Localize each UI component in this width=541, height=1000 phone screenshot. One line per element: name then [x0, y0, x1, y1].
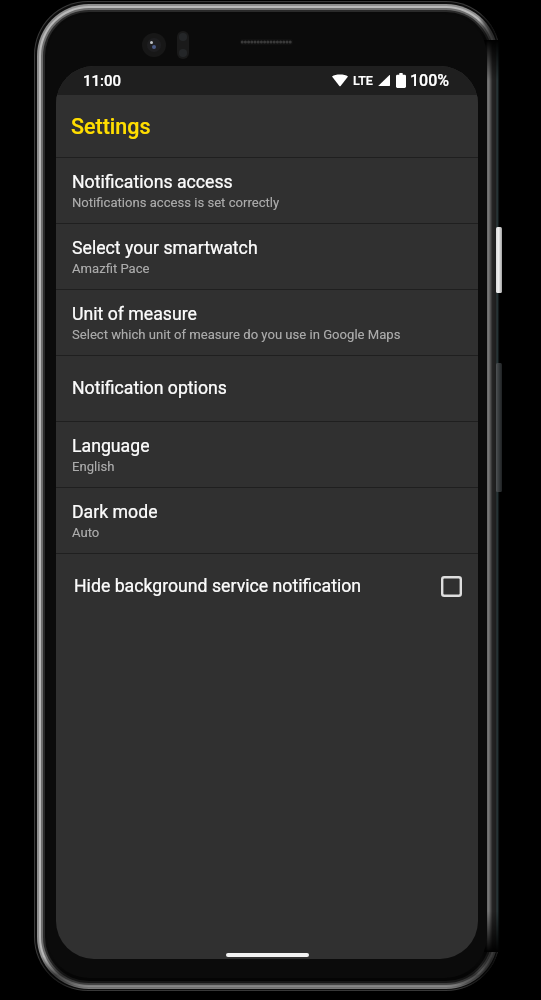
staticText: Settings — [71, 114, 151, 139]
staticText: 11:00 — [83, 72, 122, 90]
staticText: Select which unit of measure do you use … — [72, 327, 401, 342]
button[interactable]: Language — [56, 422, 478, 487]
staticText: Language — [72, 436, 150, 457]
staticText: LTE — [353, 73, 373, 88]
button[interactable]: Hide background service notification — [56, 554, 478, 619]
staticText: Select your smartwatch — [72, 238, 258, 259]
staticText: Amazfit Pace — [72, 261, 150, 276]
button[interactable]: Select your smartwatch — [56, 224, 478, 289]
other: Hide background service notification — [441, 576, 462, 597]
staticText: Hide background service notification — [74, 576, 441, 597]
button[interactable]: Notifications access — [56, 158, 478, 223]
button[interactable]: Unit of measure — [56, 290, 478, 355]
button[interactable]: Notification options — [56, 356, 478, 421]
staticText: Auto — [72, 525, 100, 540]
staticText: English — [72, 459, 115, 474]
staticText: Notifications access is set correctly — [72, 195, 280, 210]
staticText: Notifications access — [72, 172, 233, 193]
staticText: Notification options — [72, 378, 227, 399]
staticText: 100% — [410, 71, 450, 90]
button[interactable]: Dark mode — [56, 488, 478, 553]
staticText: Unit of measure — [72, 304, 197, 325]
staticText: Dark mode — [72, 502, 158, 523]
